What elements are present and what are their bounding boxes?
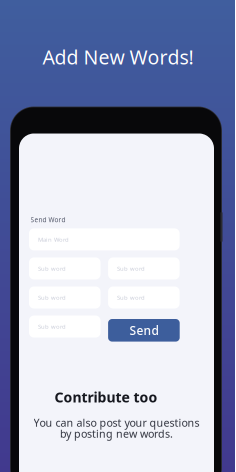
- staticText: Contribute too: [54, 387, 157, 407]
- staticText: Sub word: [38, 293, 66, 301]
- staticText: Sub word: [117, 264, 145, 272]
- staticText: Send Word: [30, 215, 65, 224]
- button[interactable]: Sub word: [108, 257, 180, 279]
- button[interactable]: Main Word: [29, 228, 180, 250]
- staticText: Sub word: [38, 264, 66, 272]
- button[interactable]: Sub word: [108, 286, 180, 308]
- button[interactable]: Sub word: [29, 257, 100, 279]
- staticText: Sub word: [38, 323, 66, 331]
- staticText: You can also post your questions: [33, 415, 199, 430]
- staticText: Add New Words!: [42, 44, 193, 70]
- staticText: by posting new words.: [60, 426, 173, 441]
- staticText: Main Word: [38, 235, 69, 243]
- button[interactable]: Sub word: [29, 316, 100, 338]
- staticText: Send: [129, 322, 158, 338]
- staticText: Sub word: [117, 293, 145, 301]
- button[interactable]: Sub word: [29, 286, 100, 308]
- button[interactable]: Send: [108, 319, 180, 342]
